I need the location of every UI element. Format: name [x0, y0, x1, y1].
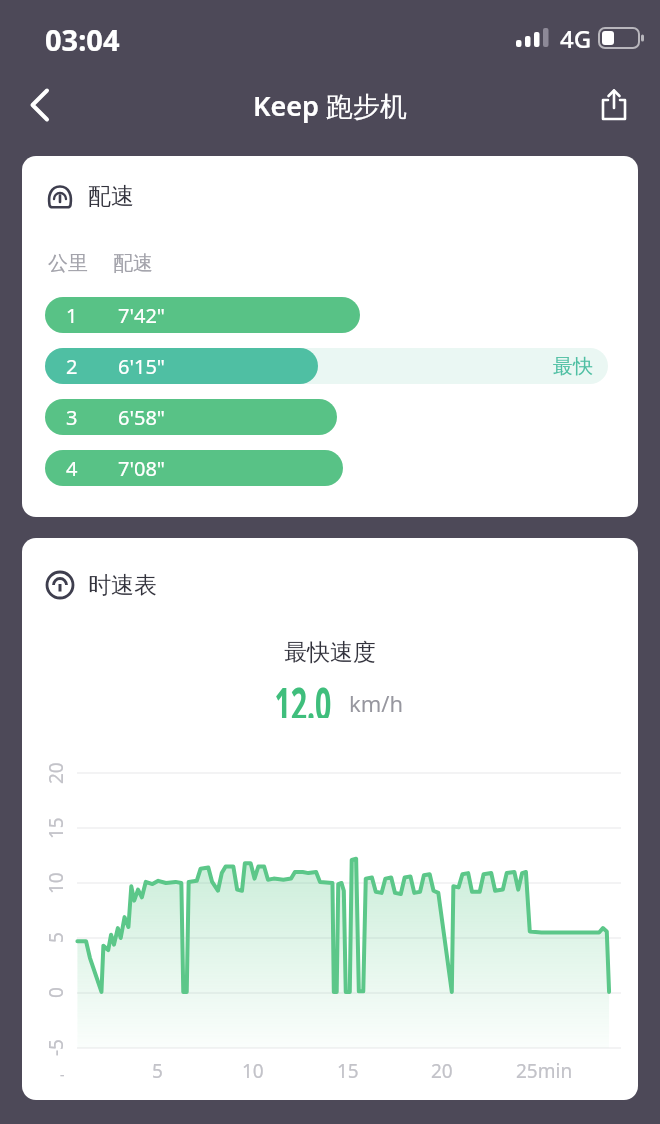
staticText: - — [60, 1065, 65, 1084]
staticText: 1 — [66, 302, 78, 329]
staticText: 7'42" — [118, 302, 165, 329]
staticText: 10 — [43, 872, 69, 894]
staticText: 最快 — [553, 354, 593, 379]
staticText: 配速 — [88, 182, 134, 211]
staticText: Keep 跑步机 — [253, 87, 407, 124]
staticText: 12.0 — [274, 672, 331, 718]
staticText: 时速表 — [88, 571, 157, 600]
staticText: 6'15" — [118, 353, 165, 380]
staticText: 15 — [337, 1058, 359, 1083]
staticText: 20 — [431, 1058, 453, 1083]
staticText: 2 — [66, 353, 78, 380]
staticText: 4G — [560, 22, 592, 54]
staticText: 10 — [242, 1058, 264, 1083]
staticText: 4 — [66, 455, 78, 482]
button[interactable] — [10, 75, 70, 135]
staticText: 最快速度 — [284, 638, 376, 666]
staticText: -5 — [43, 1039, 69, 1056]
staticText: 7'08" — [118, 455, 165, 482]
staticText: 15 — [43, 817, 69, 839]
button[interactable] — [585, 75, 645, 135]
staticText: km/h — [349, 688, 404, 718]
staticText: 3 — [66, 404, 78, 431]
staticText: 03:04 — [45, 20, 120, 58]
staticText: 配速 — [113, 251, 153, 276]
staticText: 5 — [43, 932, 69, 943]
staticText: 25min — [516, 1058, 573, 1083]
staticText: 6'58" — [118, 404, 165, 431]
staticText: 0 — [43, 987, 69, 998]
staticText: 公里 — [48, 251, 88, 276]
staticText: 5 — [152, 1058, 163, 1083]
staticText: 20 — [43, 762, 69, 784]
